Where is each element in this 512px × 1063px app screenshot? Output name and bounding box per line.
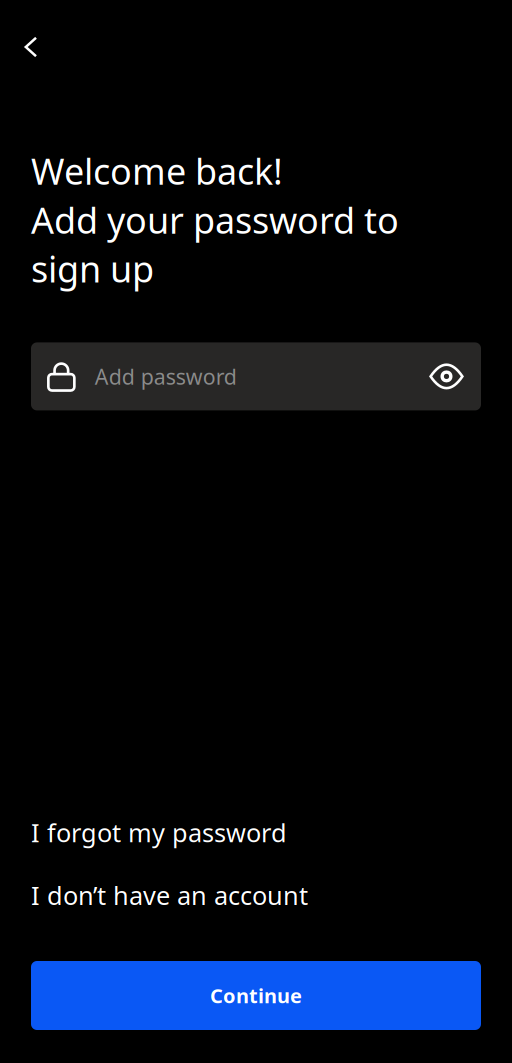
button[interactable]: Back [9,25,53,69]
button[interactable]: Show password [412,342,481,410]
staticText: Continue [210,982,302,1009]
button[interactable]: Add password [31,342,412,410]
button[interactable]: I don’t have an account [31,878,308,912]
staticText: I don’t have an account [31,878,308,912]
staticText: Welcome back! Add your password to sign … [31,147,399,292]
button[interactable]: Continue [31,961,481,1030]
staticText: I forgot my password [31,816,287,849]
button[interactable]: I forgot my password [31,816,287,849]
staticText: Add password [95,362,237,391]
